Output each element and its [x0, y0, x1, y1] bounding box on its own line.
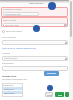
staticText: dd / mm / yyyy [4, 24, 19, 27]
button[interactable]: admin@corp [3, 91, 22, 94]
staticText: Save [58, 94, 62, 96]
button[interactable]: sales@corp [3, 87, 22, 90]
staticText: Description [2, 62, 14, 65]
staticText: Continue [47, 72, 56, 75]
button[interactable]: Take this option [2, 30, 23, 33]
button[interactable]: Cancel [45, 92, 53, 97]
staticText: Country [2, 52, 11, 55]
staticText: admin@corp [3, 92, 15, 94]
button[interactable]: Account [48, 2, 56, 10]
staticText: Username / email [3, 8, 22, 11]
button[interactable]: dd / mm / yyyy [3, 23, 67, 27]
button[interactable]: name@mail.com [3, 12, 39, 16]
staticText: Take this option [6, 30, 23, 33]
staticText: Suggestions [3, 84, 14, 86]
button[interactable]: Save [55, 92, 64, 97]
staticText: Cancel [47, 94, 52, 96]
staticText: Date of birth [3, 19, 17, 22]
staticText: name@mail.com [4, 13, 21, 16]
button[interactable]: Info [33, 25, 40, 32]
staticText: New account [29, 1, 44, 4]
button[interactable]: Continue [44, 71, 59, 76]
button[interactable]: Select country [2, 56, 68, 61]
staticText: Section title [2, 74, 17, 77]
staticText: Secondary description line [2, 78, 27, 81]
staticText: Card number [2, 36, 16, 39]
button[interactable] [2, 40, 68, 45]
button[interactable]: Help [47, 85, 53, 91]
button[interactable]: More info on signing preferences [2, 47, 37, 50]
button[interactable]: More options [65, 92, 69, 97]
button[interactable] [2, 66, 68, 71]
staticText: sales@corp [3, 88, 14, 90]
staticText: Select country [3, 57, 18, 60]
